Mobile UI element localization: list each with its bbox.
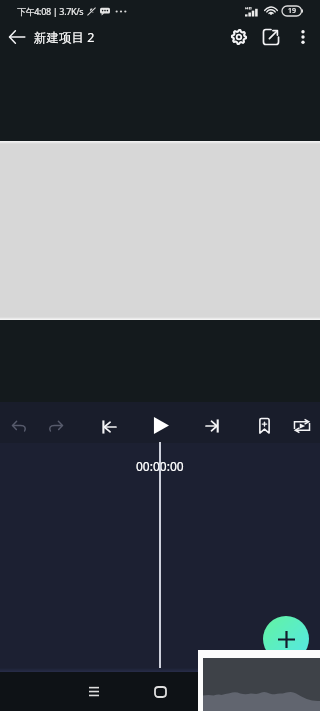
button[interactable]: Loop playback xyxy=(287,405,317,446)
button[interactable]: Export xyxy=(257,22,285,52)
staticText: 新建项目 2 xyxy=(34,29,95,46)
button[interactable]: Add bookmark xyxy=(249,405,279,446)
staticText: 00:00:00 xyxy=(136,458,184,474)
button[interactable]: Skip to start xyxy=(94,406,124,447)
button[interactable]: Redo xyxy=(41,405,71,446)
button[interactable]: Home xyxy=(143,674,178,709)
button[interactable]: Undo xyxy=(4,405,34,446)
button[interactable]: More options xyxy=(289,22,317,52)
button[interactable]: Play xyxy=(146,405,176,446)
button[interactable]: Recent apps xyxy=(76,674,111,709)
button[interactable]: Settings xyxy=(225,22,253,52)
staticText: 下午4:08 | 3.7K/s xyxy=(17,5,84,17)
button[interactable]: Add media xyxy=(263,616,309,662)
button[interactable]: Skip to end xyxy=(197,405,227,446)
staticText: 19 xyxy=(288,6,297,16)
button[interactable]: Back xyxy=(5,22,28,52)
